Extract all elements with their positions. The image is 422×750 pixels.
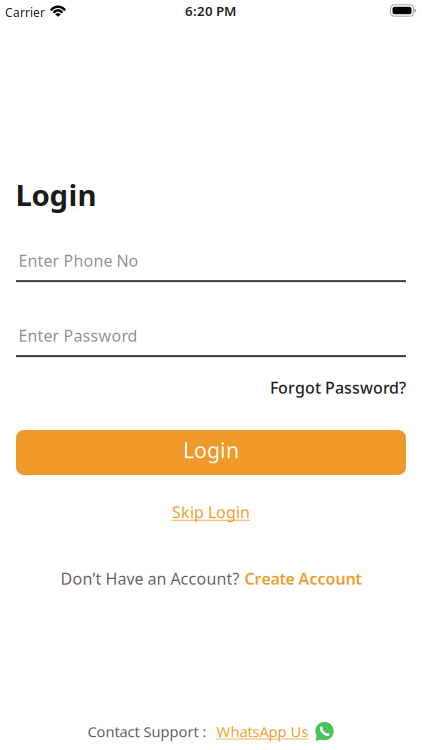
staticText: WhatsApp Us xyxy=(216,722,308,741)
button[interactable]: Don’t Have an Account? xyxy=(60,568,361,589)
staticText: Carrier xyxy=(5,4,45,20)
staticText: Contact Support : xyxy=(87,722,210,741)
staticText: Login xyxy=(15,175,96,214)
button[interactable]: Forgot Password? xyxy=(0,377,422,398)
staticText: Don’t Have an Account? xyxy=(60,568,239,589)
staticText: Create Account xyxy=(244,568,361,589)
button[interactable]: Enter Password xyxy=(0,325,422,357)
staticText: Forgot Password? xyxy=(270,377,406,398)
staticText: Login xyxy=(183,436,239,464)
staticText: Enter Password xyxy=(18,325,137,346)
button[interactable]: Skip Login xyxy=(172,501,250,523)
staticText: Skip Login xyxy=(172,501,250,523)
button[interactable]: Contact Support : xyxy=(87,721,334,741)
staticText: 6:20 PM xyxy=(185,2,236,20)
button[interactable]: Login xyxy=(16,430,406,475)
button[interactable]: Enter Phone No xyxy=(0,250,422,282)
staticText: Enter Phone No xyxy=(18,250,138,271)
